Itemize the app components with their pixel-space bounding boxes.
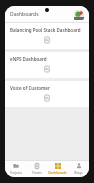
button[interactable]: Voice of Customer — [5, 81, 89, 107]
staticText: Voice of Customer — [10, 85, 50, 91]
staticText: Blogs — [74, 171, 83, 175]
staticText: Dashboards — [48, 171, 67, 175]
button[interactable]: Dashboards — [47, 161, 68, 177]
button[interactable]: Balancing Pool Stack Dashboard — [5, 23, 89, 49]
button[interactable]: Profile — [73, 9, 84, 20]
button[interactable]: eNPS Dashboard — [5, 52, 89, 78]
button[interactable]: Projects — [5, 161, 26, 177]
button[interactable]: Forms — [26, 161, 47, 177]
button[interactable]: Blogs — [68, 161, 89, 177]
staticText: Dashboards — [10, 11, 73, 18]
staticText: Balancing Pool Stack Dashboard — [10, 27, 81, 33]
staticText: Projects — [10, 171, 22, 175]
staticText: eNPS Dashboard — [10, 56, 47, 62]
staticText: Forms — [32, 171, 42, 175]
